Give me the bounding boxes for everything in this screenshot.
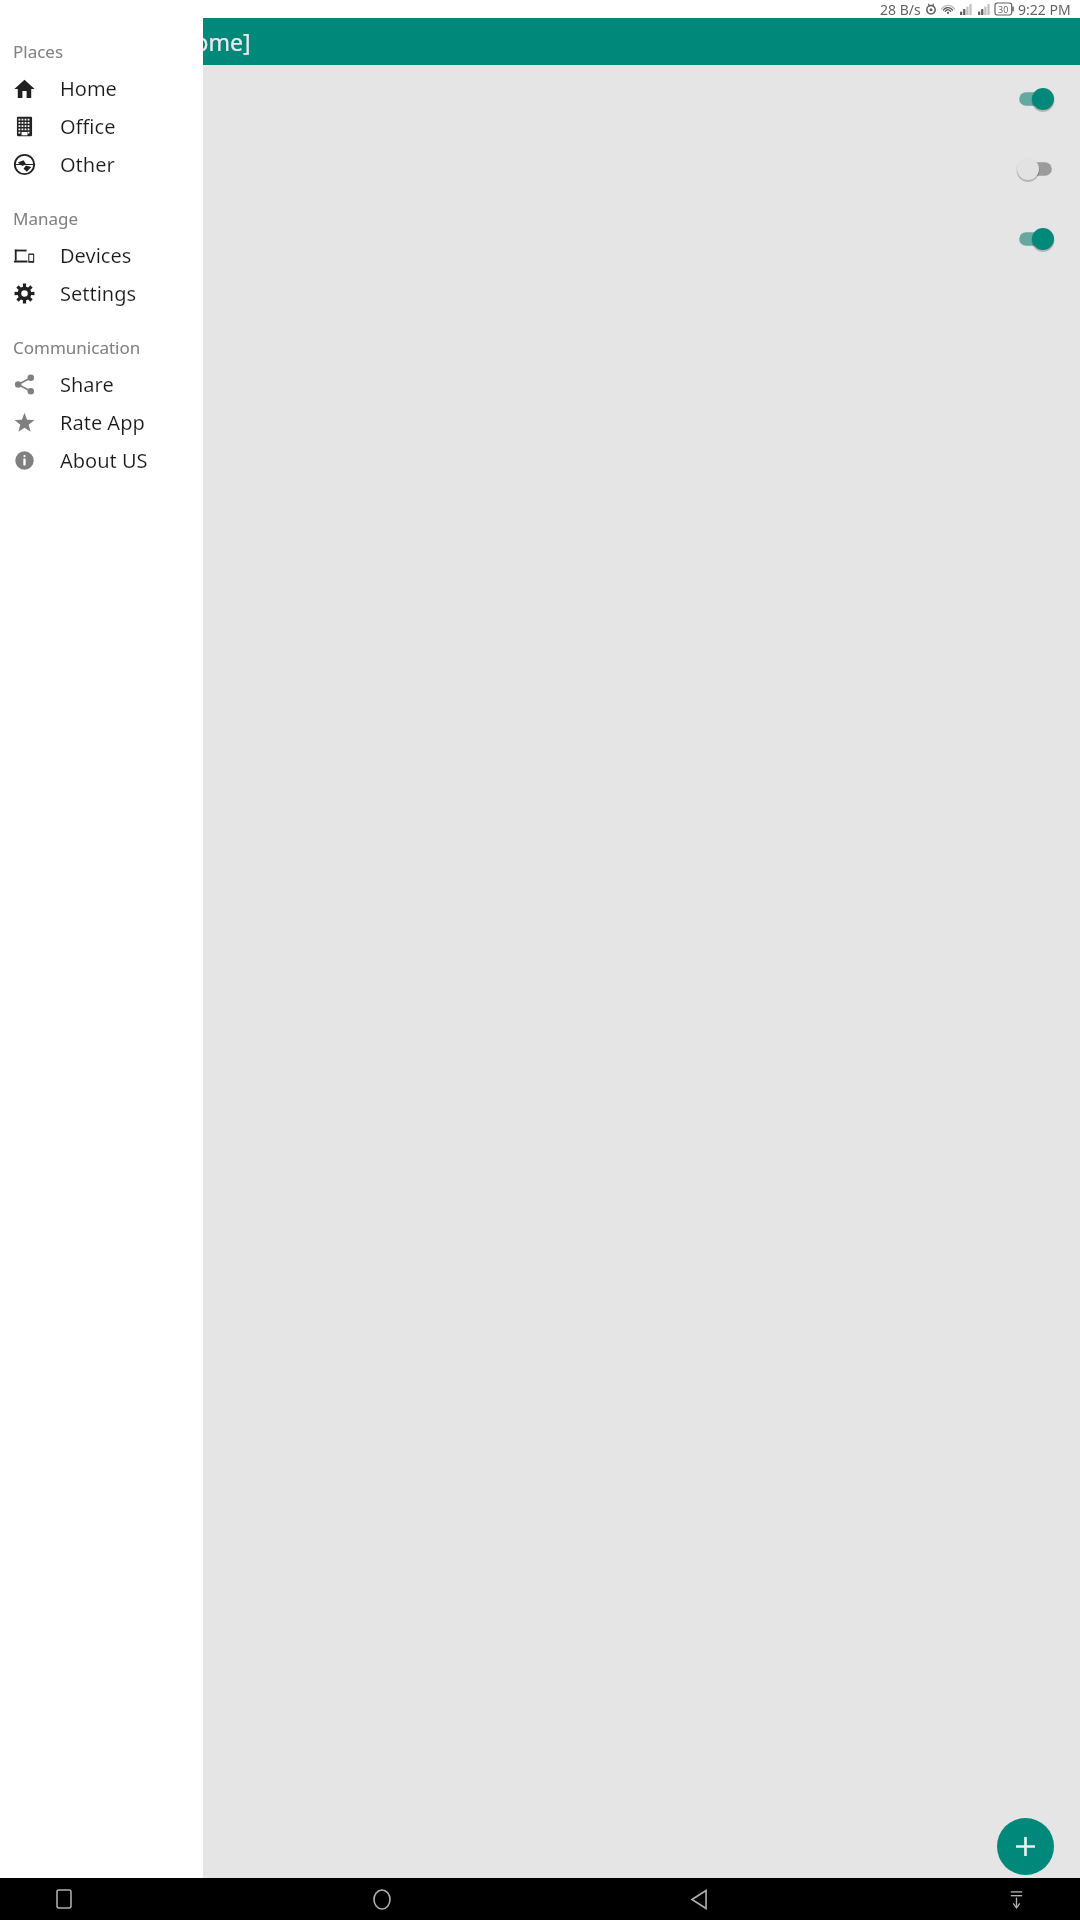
other: Switch on: [1017, 228, 1054, 250]
staticText: Office: [60, 113, 116, 140]
staticText: Share: [60, 371, 114, 398]
other: Switch on: [1017, 88, 1054, 110]
staticText: Home: [60, 75, 117, 102]
staticText: Rate App: [60, 409, 145, 436]
button[interactable]: Home: [0, 69, 203, 107]
staticText: Communication: [13, 336, 141, 359]
button[interactable]: Share: [0, 365, 203, 403]
button[interactable]: Other: [0, 145, 203, 183]
button[interactable]: Hide: [994, 1878, 1038, 1920]
button[interactable]: Home: [360, 1878, 404, 1920]
button[interactable]: Devices: [0, 236, 203, 274]
button[interactable]: Switch on: [0, 219, 1080, 258]
staticText: 28 B/s: [880, 0, 921, 18]
button[interactable]: Settings: [0, 274, 203, 312]
button[interactable]: Switch on: [0, 79, 1080, 118]
staticText: 30: [998, 3, 1009, 15]
button[interactable]: Office: [0, 107, 203, 145]
staticText: Settings: [60, 280, 137, 307]
staticText: [Home]: [170, 26, 251, 57]
staticText: About US: [60, 447, 148, 474]
staticText: Other: [60, 151, 115, 178]
button[interactable]: About US: [0, 441, 203, 479]
other: Switch off: [1017, 158, 1054, 180]
staticText: Places: [13, 40, 64, 63]
staticText: 9:22 PM: [1018, 0, 1071, 18]
button[interactable]: Back: [677, 1878, 721, 1920]
button[interactable]: Add: [997, 1818, 1054, 1875]
button[interactable]: Recents: [42, 1878, 86, 1920]
staticText: Devices: [60, 242, 132, 269]
staticText: Manage: [13, 207, 79, 230]
button[interactable]: Rate App: [0, 403, 203, 441]
button[interactable]: Switch off: [0, 149, 1080, 188]
